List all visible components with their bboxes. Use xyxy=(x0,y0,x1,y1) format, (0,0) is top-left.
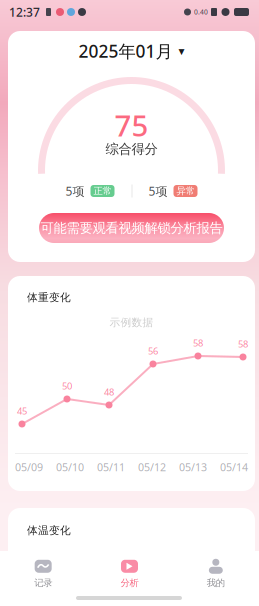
staticText: 2025年01月 xyxy=(78,39,172,62)
staticText: 体重变化 xyxy=(27,291,71,304)
staticText: 异常 xyxy=(176,185,194,197)
staticText: 5项 xyxy=(148,183,167,199)
staticText: 05/11 xyxy=(97,460,125,474)
staticText: 体温变化 xyxy=(27,524,71,537)
staticText: 58 xyxy=(193,337,203,349)
staticText: 0.40 xyxy=(194,8,208,16)
staticText: 50 xyxy=(62,380,72,392)
staticText: 示例数据 xyxy=(109,316,153,329)
button[interactable]: 记录 xyxy=(0,552,86,596)
staticText: 05/14 xyxy=(220,460,248,474)
staticText: 5项 xyxy=(65,183,84,199)
staticText: 48 xyxy=(104,386,114,398)
button[interactable]: 可能需要观看视频解锁分析报告 xyxy=(39,213,224,243)
staticText: 05/10 xyxy=(56,460,84,474)
staticText: 45 xyxy=(17,405,27,417)
staticText: 56 xyxy=(148,345,158,357)
button[interactable]: 分析 xyxy=(86,552,173,596)
staticText: 05/13 xyxy=(179,460,207,474)
staticText: 58 xyxy=(238,338,248,350)
staticText: 12:37 xyxy=(9,4,40,20)
staticText: 分析 xyxy=(120,577,138,589)
staticText: 75 xyxy=(114,105,148,144)
staticText: 正常 xyxy=(93,185,111,197)
staticText: 05/12 xyxy=(138,460,166,474)
button[interactable]: 2025年01月 xyxy=(8,38,255,64)
staticText: 可能需要观看视频解锁分析报告 xyxy=(40,220,222,236)
staticText: 我的 xyxy=(207,577,225,589)
staticText: 综合得分 xyxy=(105,141,157,157)
button[interactable]: 我的 xyxy=(173,552,259,596)
staticText: 记录 xyxy=(34,577,52,589)
staticText: ▾ xyxy=(178,44,184,58)
staticText: 05/09 xyxy=(15,460,43,474)
